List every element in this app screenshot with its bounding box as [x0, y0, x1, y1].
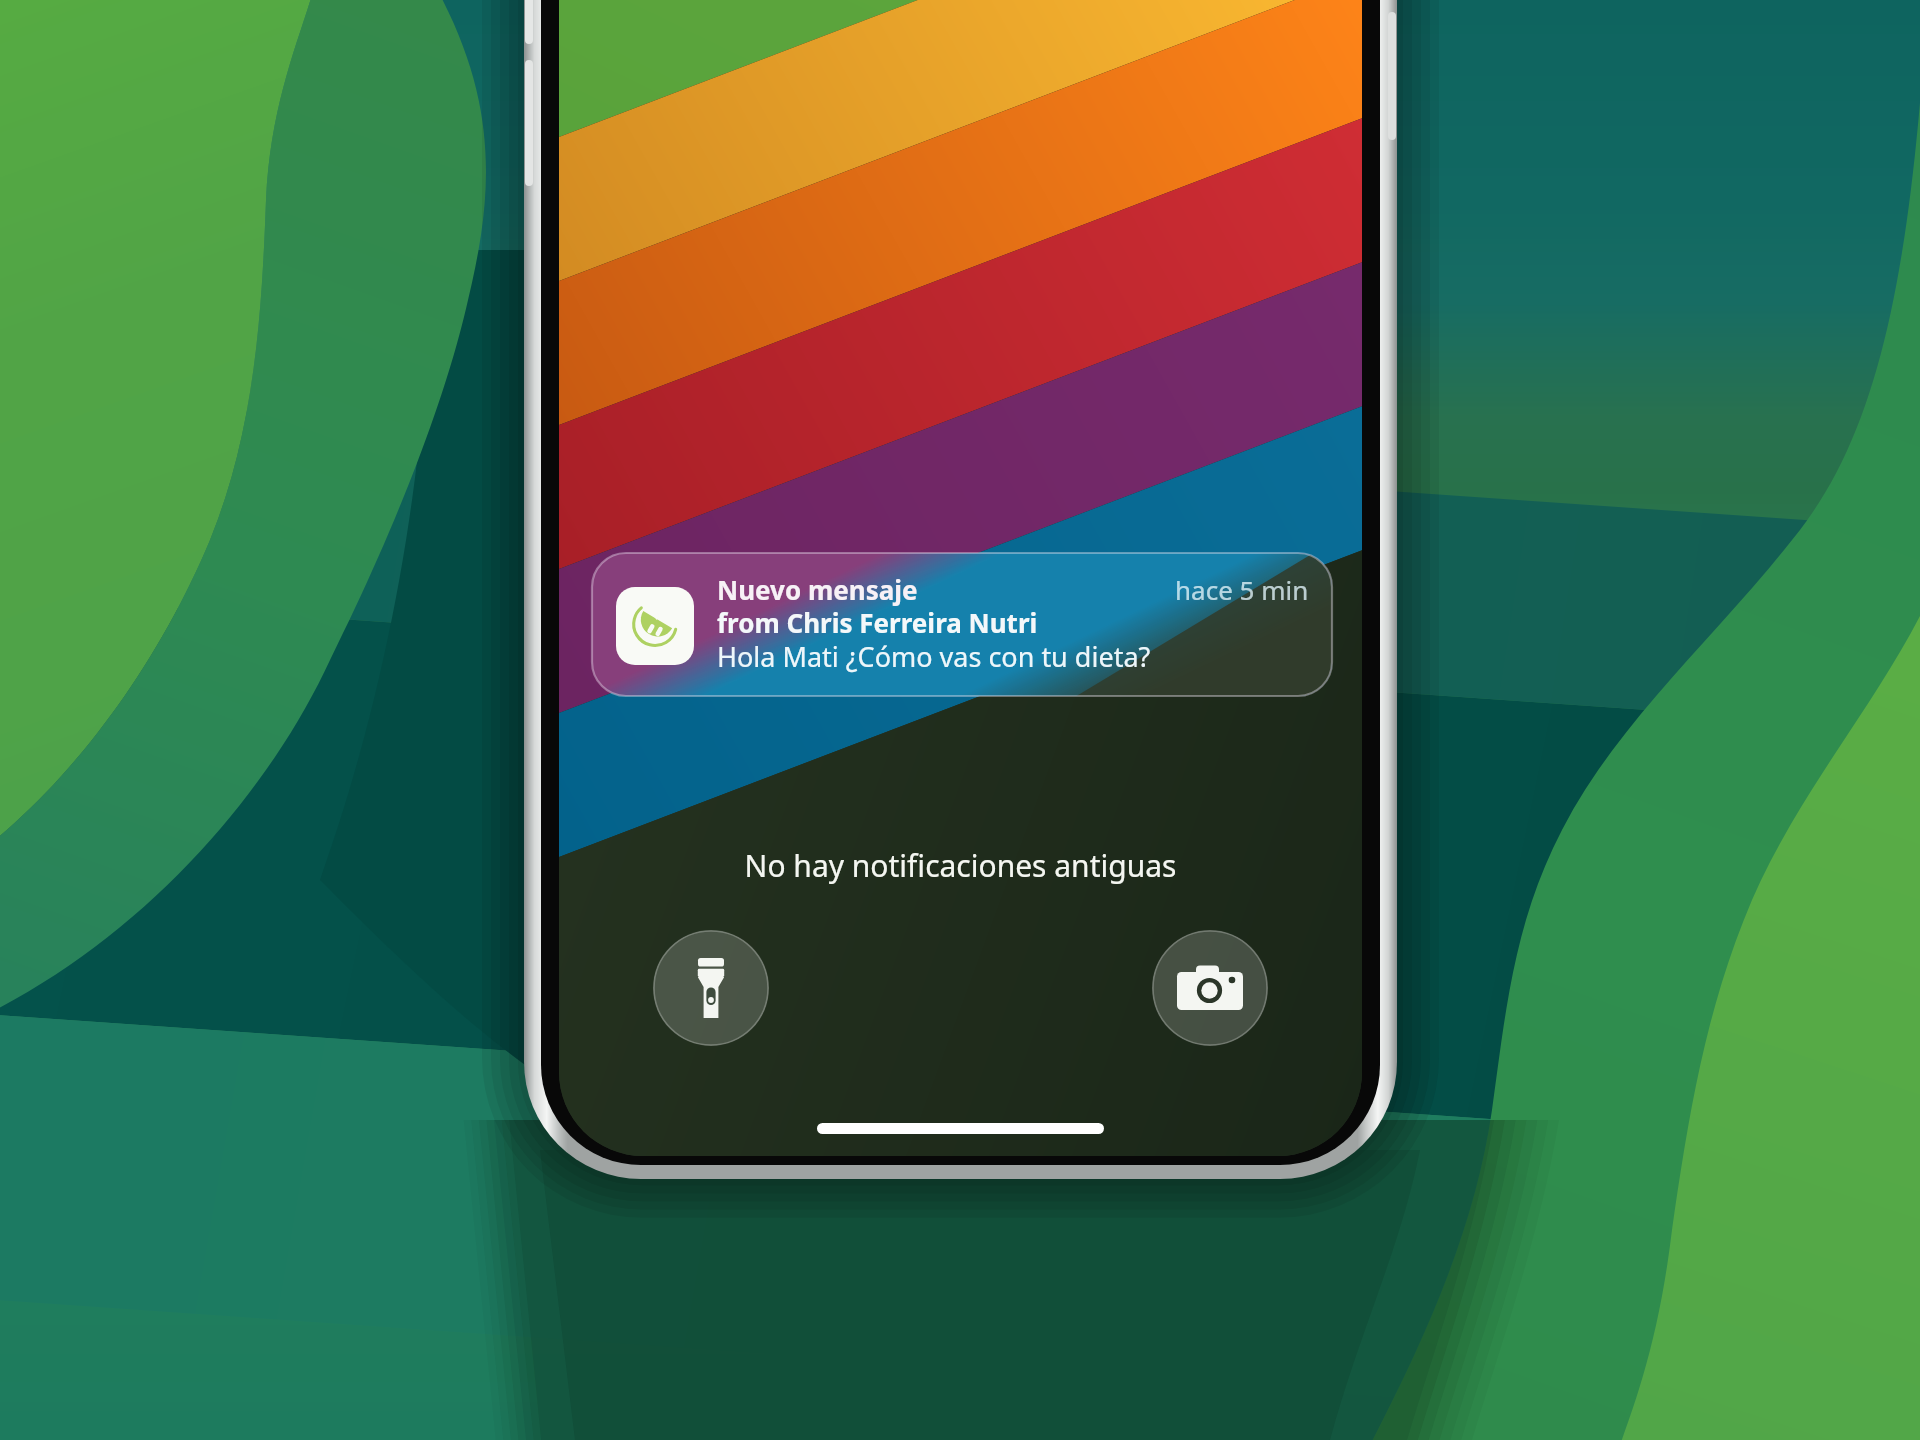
- button[interactable]: Flashlight: [653, 930, 769, 1046]
- staticText: No hay notificaciones antiguas: [559, 845, 1362, 886]
- button[interactable]: Nuevo mensaje: [592, 553, 1332, 696]
- staticText: from Chris Ferreira Nutri: [717, 605, 1038, 640]
- staticText: hace 5 min: [1175, 572, 1309, 607]
- staticText: Nuevo mensaje: [717, 572, 918, 607]
- staticText: Hola Mati ¿Cómo vas con tu dieta?: [717, 638, 1151, 675]
- button[interactable]: Camera: [1152, 930, 1268, 1046]
